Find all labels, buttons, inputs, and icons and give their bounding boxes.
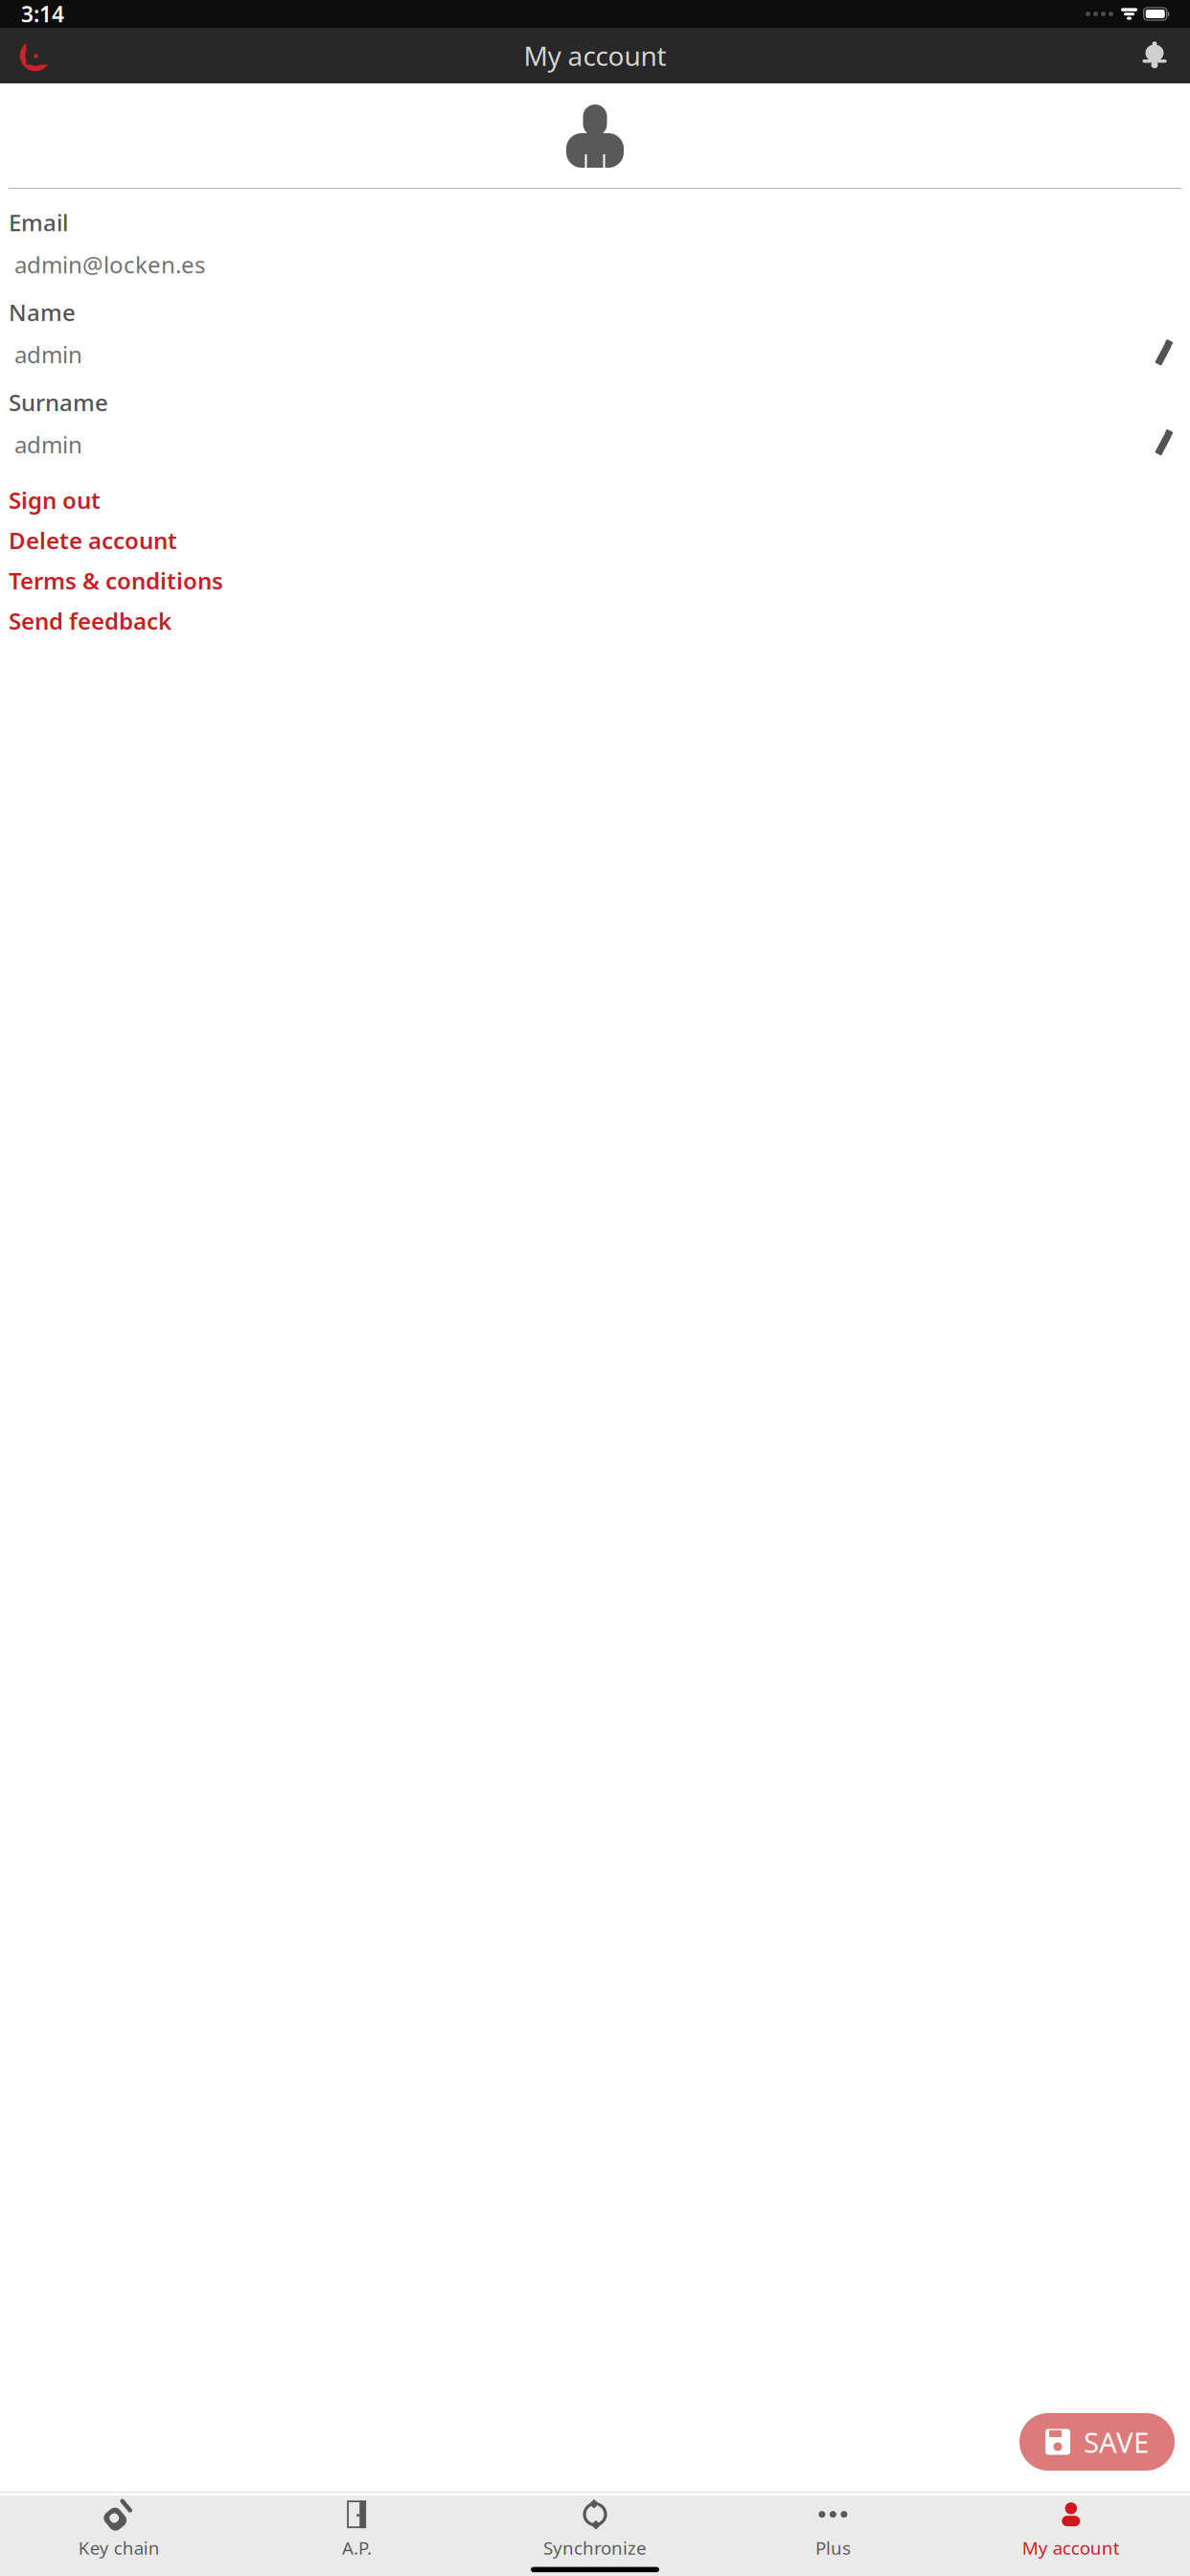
button[interactable]: SAVE [1019,2413,1175,2471]
staticText: Terms & conditions [9,565,223,596]
button[interactable]: Notifications [1129,28,1180,83]
staticText: My account [1022,2536,1120,2560]
staticText: Name [9,297,76,328]
button[interactable]: Edit Name [1145,338,1181,371]
button[interactable]: Terms & conditions [9,564,1181,597]
staticText: Synchronize [543,2536,647,2560]
button[interactable]: Sign out [9,484,1181,516]
button[interactable]: Synchronize [476,2500,714,2559]
button[interactable]: My account [952,2500,1190,2559]
button[interactable]: Locken home [10,28,61,83]
staticText: Delete account [9,525,177,555]
staticText: admin [14,339,82,370]
staticText: My account [524,38,666,73]
staticText: Surname [9,387,108,417]
staticText: admin [14,429,82,460]
button[interactable]: A.P. [238,2500,476,2559]
staticText: A.P. [342,2536,372,2560]
staticText: 3:14 [21,0,64,28]
button[interactable]: Delete account [9,524,1181,556]
staticText: admin@locken.es [14,249,205,280]
button[interactable]: Edit Surname [1145,428,1181,461]
staticText: Key chain [78,2536,160,2560]
button[interactable]: Send feedback [9,604,1181,637]
staticText: Plus [815,2536,851,2560]
button[interactable]: Plus [714,2500,952,2559]
staticText: Email [9,207,68,238]
staticText: Send feedback [9,605,172,636]
staticText: Sign out [9,485,101,515]
button[interactable]: Key chain [0,2500,238,2559]
staticText: SAVE [1084,2423,1149,2461]
